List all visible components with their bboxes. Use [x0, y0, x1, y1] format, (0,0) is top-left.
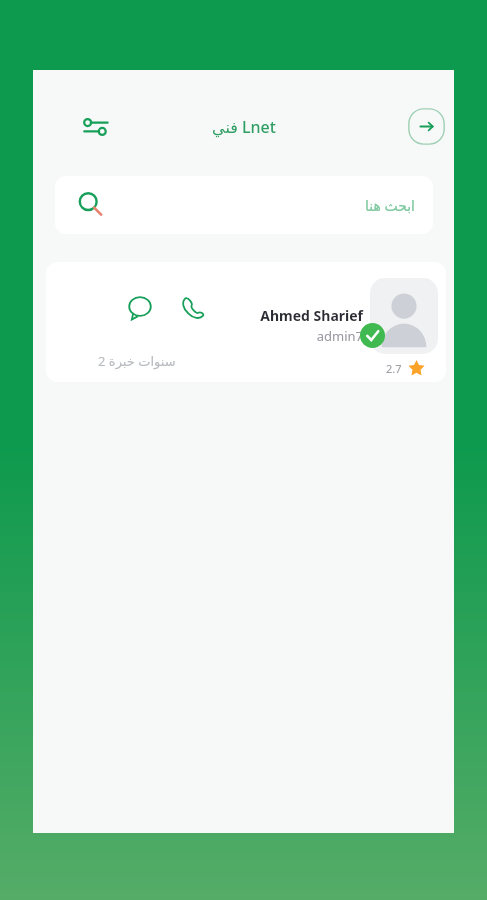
staticText: ابحث هنا	[364, 196, 415, 215]
button[interactable]: Chat	[46, 262, 446, 382]
staticText: 2.7	[386, 361, 402, 376]
staticText: admin7	[316, 327, 363, 345]
staticText: 2 سنوات خبرة	[98, 352, 176, 370]
button[interactable]: Filter	[78, 109, 114, 145]
staticText: فني Lnet	[212, 116, 276, 138]
button[interactable]: Call	[177, 292, 209, 324]
button[interactable]: ابحث هنا	[55, 176, 433, 234]
button[interactable]: Next	[406, 106, 447, 147]
button[interactable]: Chat	[124, 292, 156, 324]
staticText: Ahmed Sharief	[260, 306, 363, 325]
